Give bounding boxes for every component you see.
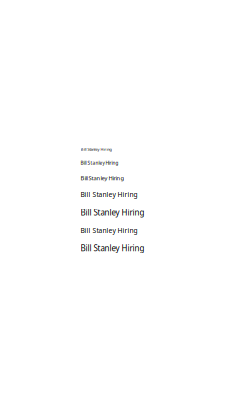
staticText: Bill Stanley Hiring (80, 190, 137, 199)
staticText: Bill Stanley Hiring (80, 243, 144, 253)
staticText: Bill Stanley Hiring (80, 226, 137, 235)
staticText: Bill Stanley Hiring (80, 174, 124, 182)
staticText: Bill Stanley Hiring (80, 147, 111, 152)
staticText: Bill Stanley Hiring (80, 207, 144, 218)
staticText: Bill Stanley Hiring (80, 160, 118, 166)
